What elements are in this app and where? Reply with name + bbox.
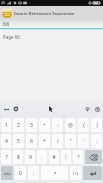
staticText: 1/2 xyxy=(72,171,79,176)
staticText: ! xyxy=(65,154,67,161)
staticText: - xyxy=(57,122,59,129)
button[interactable]: . xyxy=(37,150,47,164)
staticText: 4G xyxy=(1,1,6,5)
button[interactable]: Resize keyboard xyxy=(2,105,10,113)
button[interactable]: ' xyxy=(78,134,89,148)
staticText: 2 xyxy=(17,122,20,129)
staticText: ' xyxy=(83,138,85,145)
button[interactable]: 6 xyxy=(26,134,37,148)
staticText: 4 xyxy=(5,138,8,145)
button[interactable]: 9 xyxy=(25,150,35,164)
button[interactable]: " xyxy=(65,134,76,148)
staticText: ? xyxy=(77,154,80,161)
button[interactable]: Stickers xyxy=(83,105,91,113)
button[interactable]: : xyxy=(91,134,102,148)
staticText: ) xyxy=(96,122,98,129)
button[interactable]: * xyxy=(39,134,50,148)
staticText: 8 xyxy=(17,154,20,161)
button[interactable]: 7 xyxy=(1,150,11,164)
button[interactable]: ! xyxy=(61,150,71,164)
button[interactable]: Settings xyxy=(12,105,20,113)
staticText: , xyxy=(33,170,35,177)
button[interactable]: 8 xyxy=(13,150,23,164)
staticText: : xyxy=(96,138,98,145)
staticText: ( xyxy=(83,122,85,129)
staticText: " xyxy=(69,138,72,145)
button[interactable]: ( xyxy=(78,118,89,132)
staticText: 0 xyxy=(19,170,22,177)
staticText: 5 xyxy=(17,138,20,145)
button[interactable]: - xyxy=(52,118,63,132)
button[interactable]: ? xyxy=(73,150,83,164)
button[interactable]: + xyxy=(39,118,50,132)
button[interactable]: ) xyxy=(91,118,102,132)
button[interactable]: 5 xyxy=(13,134,24,148)
staticText: / xyxy=(57,138,59,145)
staticText: . xyxy=(41,154,43,161)
other: Enter xyxy=(83,166,102,180)
staticText: Page 66 xyxy=(3,34,20,40)
button[interactable]: @ xyxy=(65,118,76,132)
staticText: 66 xyxy=(3,20,10,27)
staticText: 1 xyxy=(5,122,8,129)
staticText: 3 xyxy=(30,122,33,129)
button[interactable]: Account xyxy=(93,105,101,113)
other: Space xyxy=(41,166,68,180)
button[interactable]: 1 xyxy=(1,118,11,132)
button[interactable]: Space xyxy=(41,166,68,180)
staticText: * xyxy=(43,138,46,145)
staticText: @ xyxy=(68,122,73,129)
staticText: abc xyxy=(4,171,11,176)
button[interactable]: / xyxy=(52,134,63,148)
button[interactable]: App icon xyxy=(1,7,12,18)
button[interactable]: Backspace xyxy=(85,150,102,164)
button[interactable]: # xyxy=(49,150,59,164)
button[interactable]: 4 xyxy=(1,134,11,148)
button[interactable]: 2 xyxy=(13,118,24,132)
staticText: Imarni Behtaneen Taqreerain xyxy=(14,10,75,16)
button[interactable]: Enter xyxy=(83,166,102,180)
staticText: 9 xyxy=(29,154,32,161)
button[interactable]: abc xyxy=(1,166,13,180)
staticText: 6 xyxy=(30,138,33,145)
staticText: 7 xyxy=(5,154,8,161)
button[interactable]: 1/2 xyxy=(70,166,81,180)
button[interactable]: , xyxy=(28,166,39,180)
staticText: + xyxy=(43,122,46,129)
button[interactable]: 0 xyxy=(15,166,26,180)
button[interactable]: 3 xyxy=(26,118,37,132)
staticText: # xyxy=(52,154,56,161)
other: Backspace xyxy=(85,150,102,164)
